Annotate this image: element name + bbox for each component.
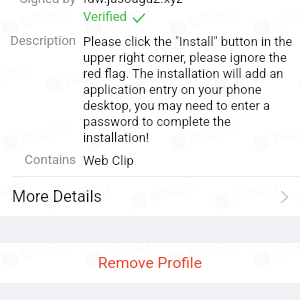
other: Verified: [133, 13, 145, 23]
staticText: More Details: [12, 187, 102, 206]
staticText: Contains: [0, 152, 76, 167]
staticText: Web Clip: [83, 153, 134, 168]
staticText: Remove Profile: [98, 254, 202, 272]
staticText: Please click the "Install" button in the…: [83, 34, 295, 145]
button[interactable]: Remove Profile: [0, 243, 300, 283]
staticText: Verified: [83, 9, 127, 24]
staticText: fdw.jasoagu2.xyz: [83, 0, 183, 6]
button[interactable]: More Details: [0, 177, 300, 216]
staticText: Signed by: [0, 0, 76, 6]
staticText: Description: [0, 33, 76, 48]
